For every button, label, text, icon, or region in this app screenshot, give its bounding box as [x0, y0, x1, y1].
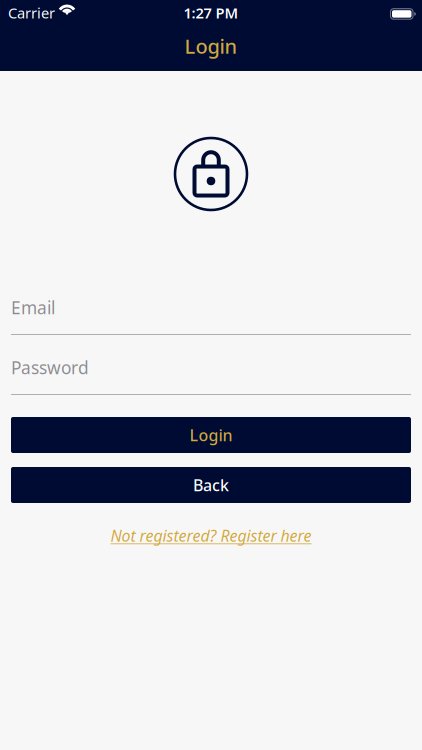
button[interactable]: Password	[11, 358, 411, 395]
staticText: Carrier	[8, 3, 55, 22]
staticText: Login	[189, 424, 232, 446]
button[interactable]: Email	[11, 298, 411, 335]
button[interactable]: Login	[11, 417, 411, 453]
staticText: Password	[11, 356, 89, 379]
staticText: Email	[11, 296, 55, 319]
staticText: Not registered? Register here	[110, 525, 311, 546]
staticText: Login	[184, 33, 237, 59]
button[interactable]: Back	[11, 467, 411, 503]
staticText: 1:27 PM	[183, 3, 238, 22]
button[interactable]: Not registered? Register here	[110, 525, 311, 546]
staticText: Back	[193, 474, 229, 496]
